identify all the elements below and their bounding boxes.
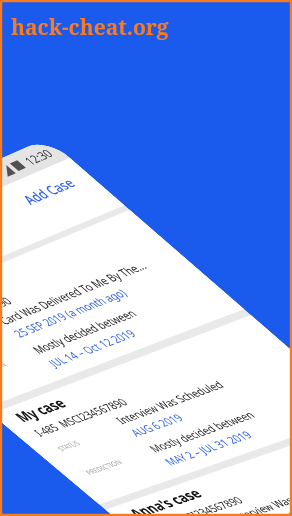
button[interactable]: Anna's case [105,418,292,516]
staticText: My case [9,394,72,426]
staticText: hack-cheat.org [11,13,169,42]
staticText: 12:30 [20,146,56,168]
staticText: Card Was Delivered To Me By The... [0,258,151,327]
staticText: PREDICTION [82,457,125,477]
staticText: Interview Was Scheduled [226,478,292,516]
staticText: 25 SEP 2019 (a month ago) [9,285,131,340]
staticText: Interview Was Scheduled [111,378,227,427]
staticText: AUG 6 2019 [241,509,292,516]
staticText: Add Case [18,174,80,208]
staticText: Mostly decided between [259,507,292,516]
staticText: I-485 MSC1234567890 [0,294,16,341]
staticText: I-485 MSCI234567890 [30,395,131,439]
staticText: PREDICTION [0,359,9,379]
staticText: Anna's case [124,484,207,516]
button[interactable]: John's case [0,210,244,408]
staticText: Mostly decided between [145,408,259,455]
staticText: JUL 14 – Oct 12 2019 [44,326,140,369]
button[interactable]: Add Case [12,170,85,212]
staticText: Mostly decided between [28,306,141,356]
staticText: AUG 6 2019 [126,411,187,439]
staticText: I-485 MSCI234567890 [144,493,246,516]
staticText: STATUS [54,438,83,453]
staticText: MAY 2 – JUL 31 2019 [160,428,256,468]
button[interactable]: My case [0,315,292,504]
